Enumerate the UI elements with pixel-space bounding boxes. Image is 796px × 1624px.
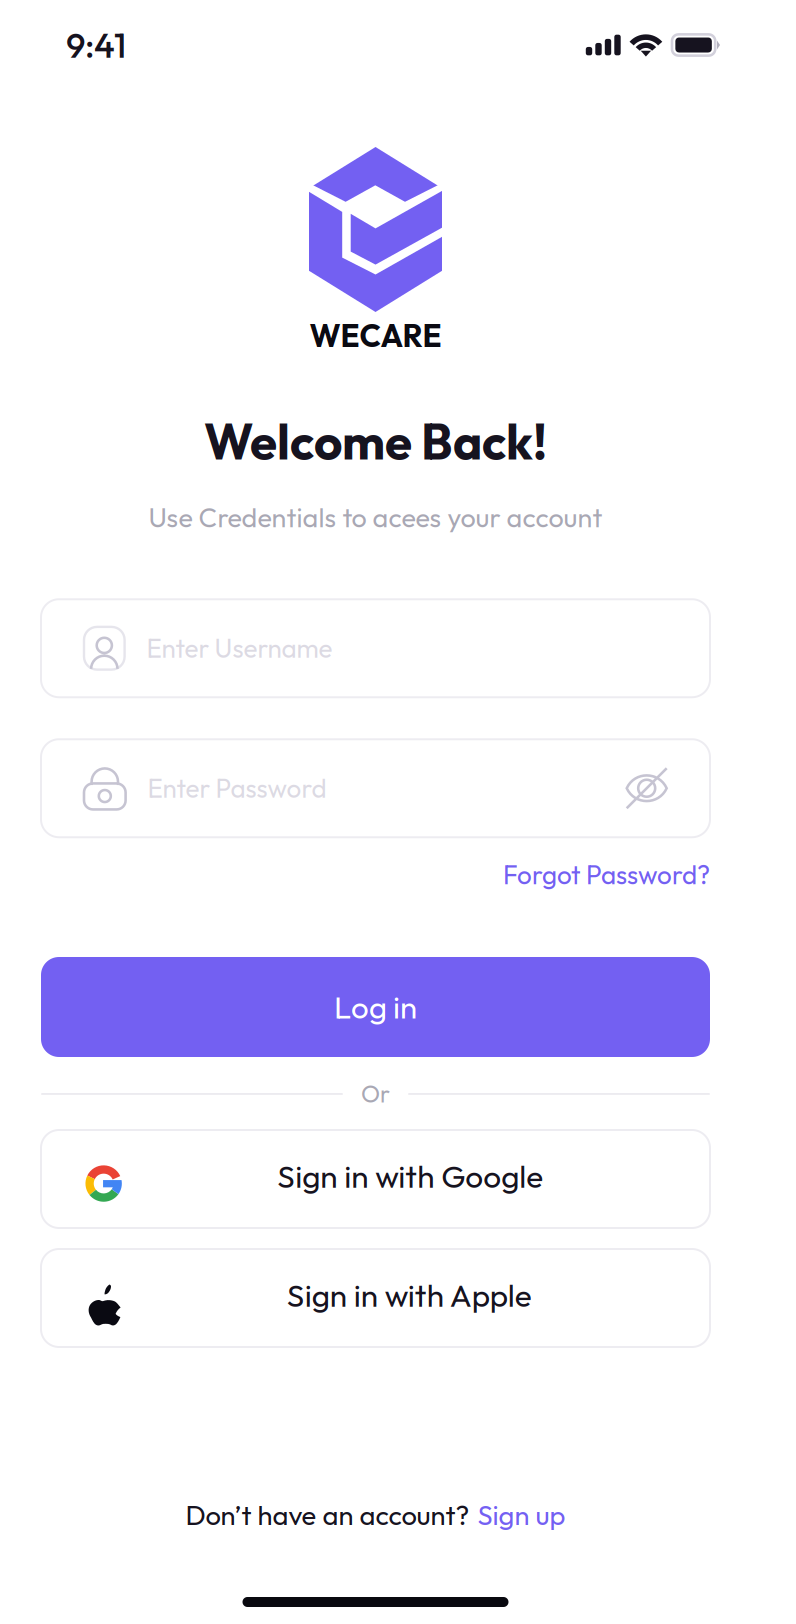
button[interactable]: Enter Username [41,599,710,697]
staticText: Welcome Back! [204,410,547,472]
button[interactable]: Don’t have an account? [41,1498,710,1532]
staticText: Enter Username [147,632,333,665]
button[interactable]: Sign in with Apple [41,1249,710,1347]
button[interactable]: Forgot Password? [41,837,710,891]
staticText: Forgot Password? [503,858,710,891]
staticText: 9:41 [66,23,126,67]
staticText: Don’t have an account? [185,1498,469,1532]
staticText: Enter Password [148,772,327,805]
staticText: Sign up [477,1498,565,1532]
button[interactable]: Sign in with Google [41,1130,710,1228]
staticText: Sign in with Google [277,1156,543,1196]
button[interactable]: Log in [41,957,710,1057]
staticText: Log in [334,987,417,1027]
staticText: Or [361,1078,390,1109]
staticText: WECARE [309,316,441,355]
staticText: Sign in with Apple [287,1275,532,1315]
staticText: Use Credentials to acees your account [148,500,602,534]
button[interactable]: Enter Password [41,739,710,837]
